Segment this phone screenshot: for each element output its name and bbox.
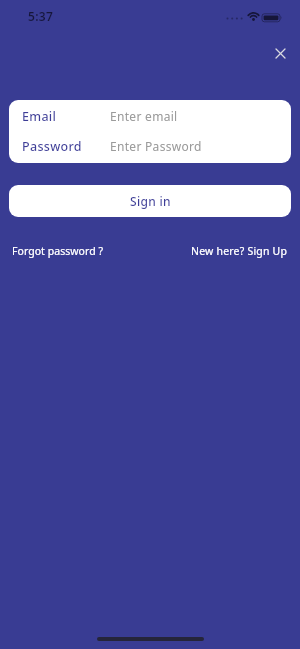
button[interactable]: New here? Sign Up bbox=[191, 244, 288, 258]
staticText: Email bbox=[22, 108, 57, 125]
staticText: Enter Password bbox=[110, 138, 202, 154]
staticText: Sign in bbox=[130, 193, 171, 209]
button[interactable]: Password bbox=[22, 134, 291, 158]
staticText: Password bbox=[22, 138, 82, 155]
staticText: Forgot password ? bbox=[12, 244, 104, 258]
button[interactable]: Forgot password ? bbox=[12, 244, 104, 258]
button[interactable]: Sign in bbox=[9, 185, 291, 217]
button[interactable]: Email bbox=[22, 104, 291, 128]
staticText: New here? Sign Up bbox=[191, 244, 288, 258]
staticText: 5:37 bbox=[28, 8, 54, 24]
button[interactable] bbox=[270, 43, 290, 63]
staticText: Enter email bbox=[110, 108, 178, 124]
